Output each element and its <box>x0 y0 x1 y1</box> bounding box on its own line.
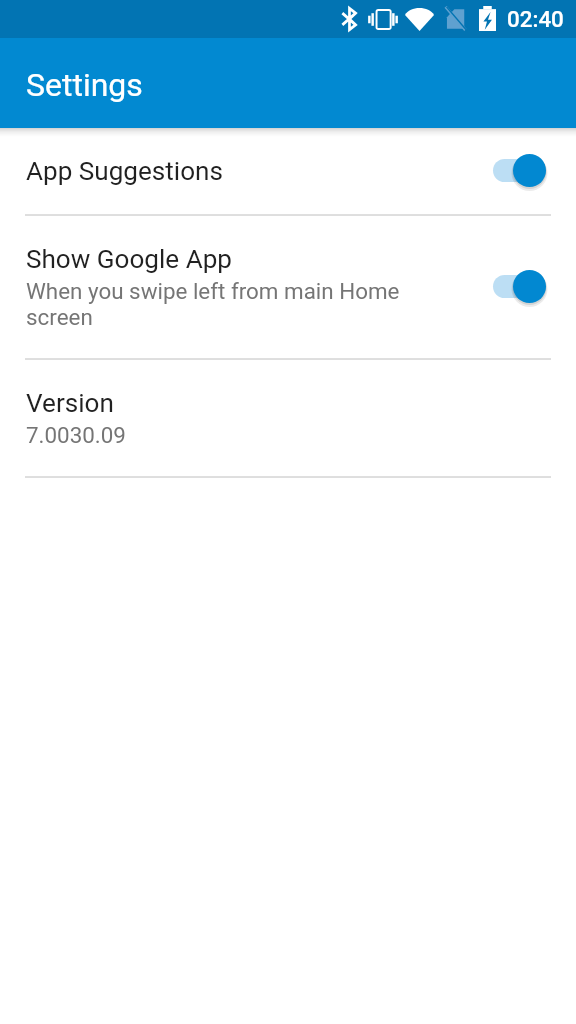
button[interactable]: Show Google App <box>0 216 576 358</box>
staticText: App Suggestions <box>26 156 223 187</box>
staticText: When you swipe left from main Home scree… <box>26 278 426 330</box>
staticText: Version <box>26 388 114 419</box>
button[interactable]: Version <box>0 360 576 476</box>
button[interactable]: App Suggestions <box>0 128 576 214</box>
button[interactable]: Toggle setting, on <box>493 154 546 187</box>
button[interactable]: Toggle setting, on <box>493 270 546 303</box>
staticText: Settings <box>26 66 143 104</box>
staticText: 02:40 <box>507 6 564 32</box>
staticText: Show Google App <box>26 244 232 275</box>
staticText: 7.0030.09 <box>26 422 126 448</box>
